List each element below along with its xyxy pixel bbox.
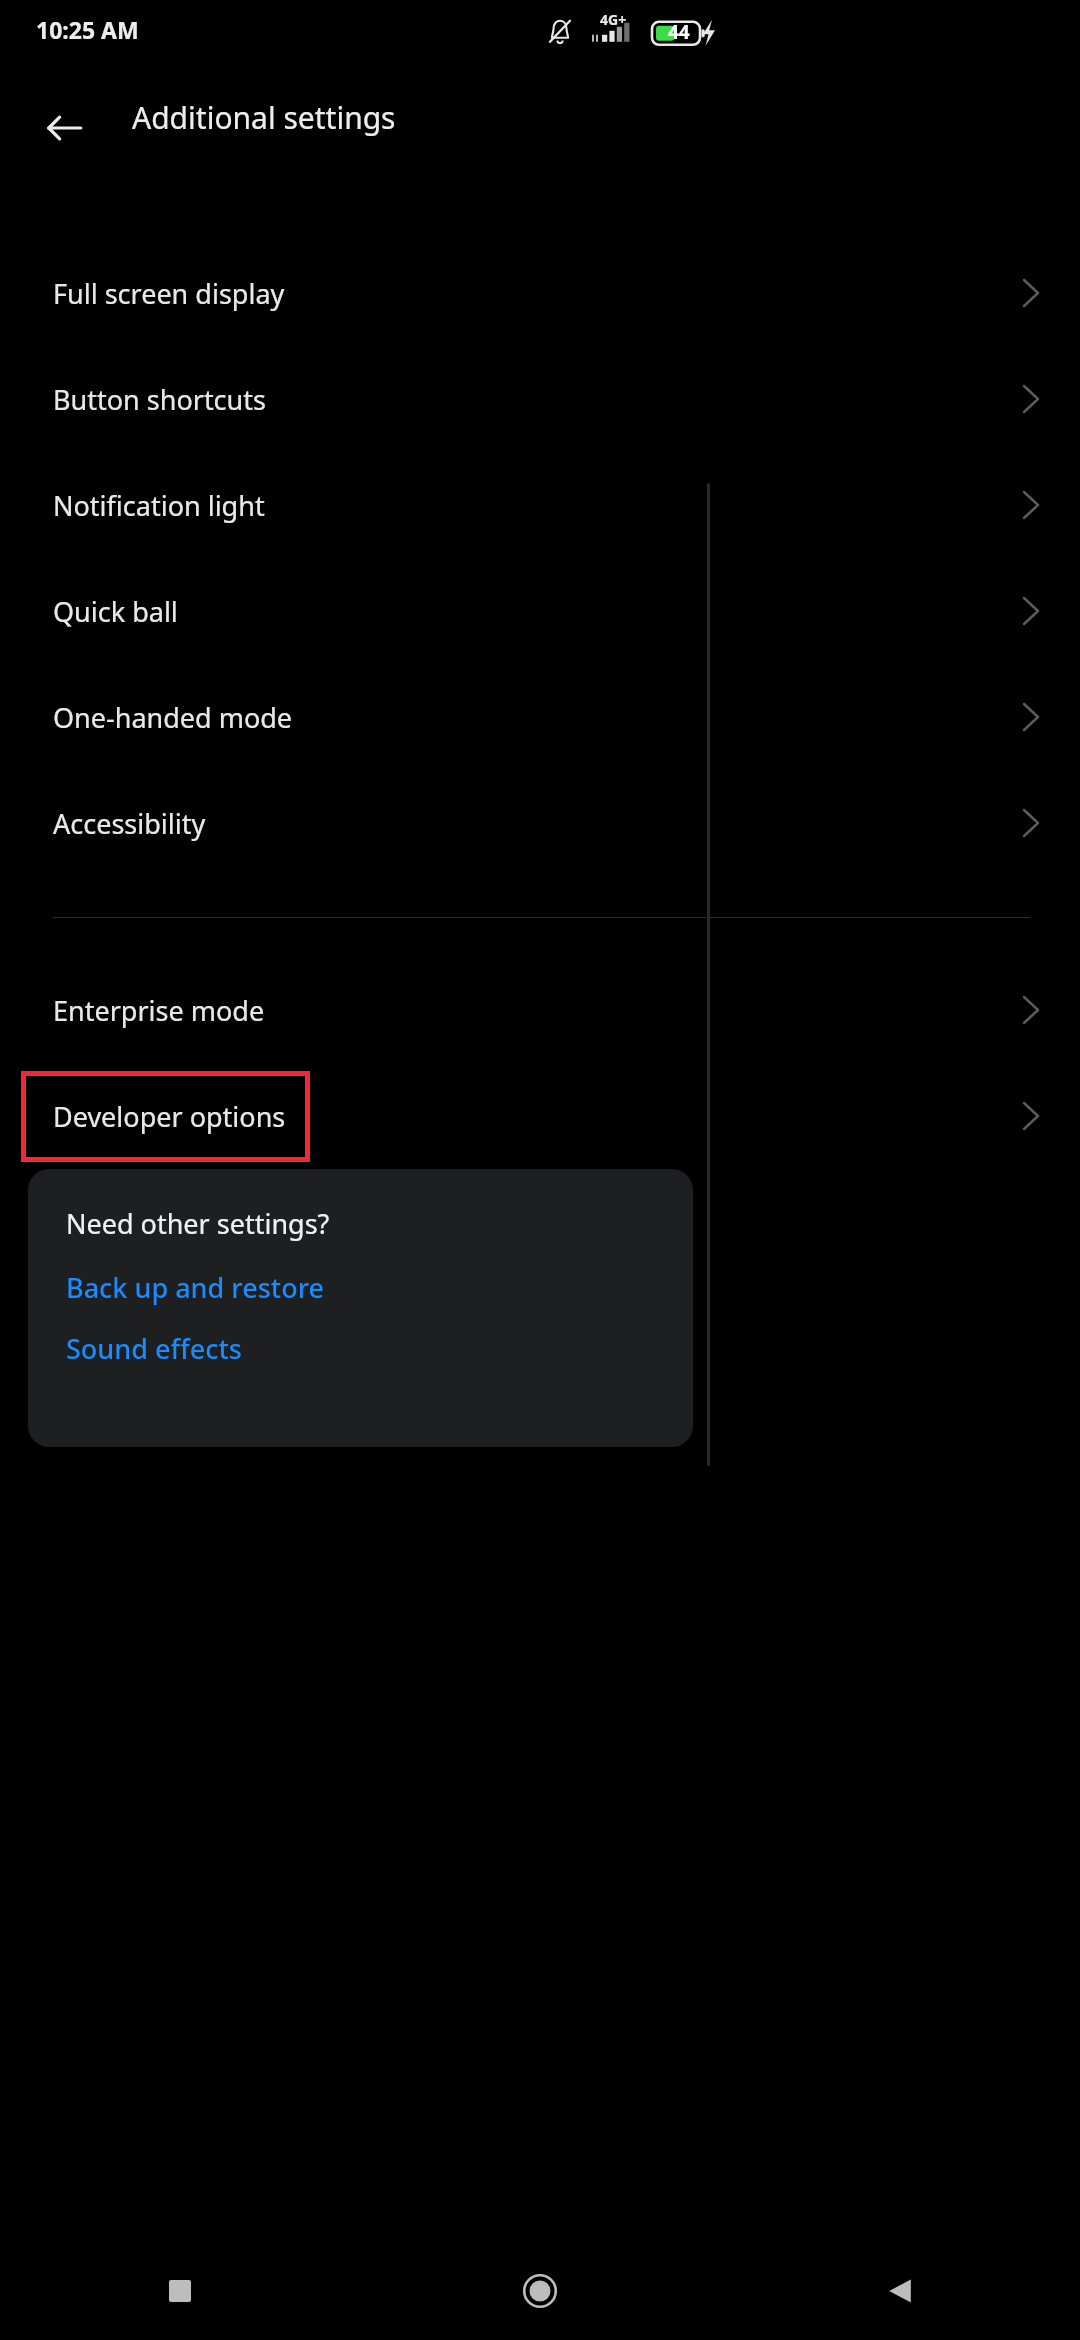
staticText: Developer options: [53, 1098, 286, 1135]
staticText: Quick ball: [53, 593, 178, 630]
button[interactable]: Notification light: [0, 452, 1080, 558]
staticText: Additional settings: [132, 97, 396, 138]
staticText: Back up and restore: [66, 1269, 325, 1306]
staticText: 10:25 AM: [36, 14, 139, 45]
button[interactable]: Recent apps: [0, 2248, 360, 2340]
staticText: One-handed mode: [53, 699, 293, 736]
staticText: 44: [668, 19, 690, 45]
button[interactable]: Sound effects: [66, 1330, 242, 1367]
staticText: Button shortcuts: [53, 381, 266, 418]
button[interactable]: Accessibility: [0, 770, 1080, 876]
staticText: Need other settings?: [66, 1205, 330, 1242]
staticText: Sound effects: [66, 1330, 242, 1367]
button[interactable]: Home: [360, 2248, 720, 2340]
staticText: Enterprise mode: [53, 992, 265, 1029]
staticText: Full screen display: [53, 275, 285, 312]
button[interactable]: Developer options: [0, 1063, 1080, 1169]
button[interactable]: One-handed mode: [0, 664, 1080, 770]
button[interactable]: Back: [24, 88, 104, 168]
button[interactable]: Back up and restore: [66, 1269, 325, 1306]
button[interactable]: Enterprise mode: [0, 957, 1080, 1063]
staticText: Accessibility: [53, 805, 206, 842]
button[interactable]: Quick ball: [0, 558, 1080, 664]
staticText: 4G+: [600, 10, 627, 29]
button[interactable]: Back: [720, 2248, 1080, 2340]
button[interactable]: Button shortcuts: [0, 346, 1080, 452]
staticText: Notification light: [53, 487, 265, 524]
button[interactable]: Full screen display: [0, 240, 1080, 346]
